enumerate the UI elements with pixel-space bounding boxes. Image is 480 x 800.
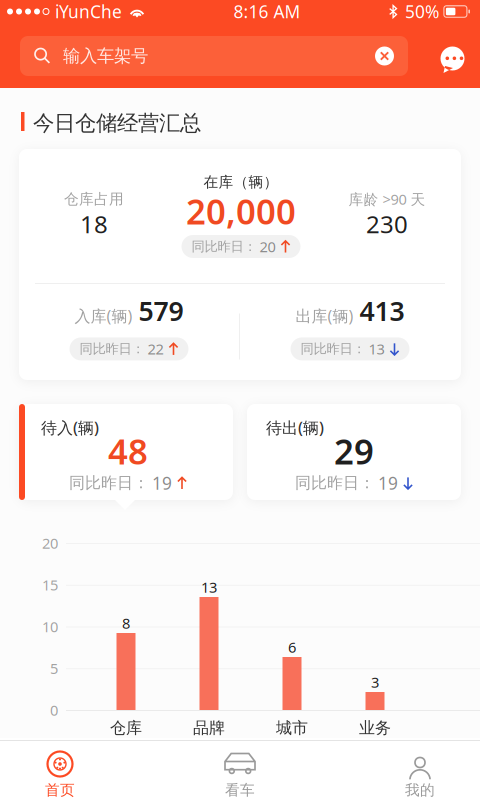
staticText: 出库(辆) — [295, 305, 353, 326]
staticText: 在库（辆） — [203, 173, 278, 191]
staticText: 20 — [42, 533, 58, 553]
staticText: 6 — [288, 637, 296, 657]
button[interactable]: 首页 — [0, 741, 120, 799]
staticText: 13 — [368, 339, 384, 359]
staticText: 品牌 — [193, 718, 225, 738]
staticText: 待入(辆) — [41, 417, 99, 438]
staticText: 8 — [122, 613, 130, 633]
staticText: 入库(辆) — [74, 305, 132, 326]
staticText: 18 — [80, 208, 108, 240]
staticText: 我的 — [405, 781, 435, 799]
staticText: 库龄 >90 天 — [348, 189, 425, 209]
staticText: 同比昨日： — [300, 341, 365, 357]
staticText: 同比昨日： — [295, 473, 375, 493]
staticText: 13 — [201, 577, 217, 597]
staticText: 业务 — [359, 718, 391, 738]
button[interactable]: 看车 — [180, 741, 300, 799]
staticText: 今日仓储经营汇总 — [33, 110, 201, 136]
staticText: 待出(辆) — [266, 417, 324, 438]
staticText: 仓库 — [110, 718, 142, 738]
staticText: 19 — [378, 471, 398, 494]
staticText: 同比昨日： — [79, 341, 144, 357]
staticText: 579 — [138, 293, 183, 328]
button[interactable]: 我的 — [360, 741, 480, 799]
staticText: 20,000 — [186, 188, 296, 234]
button[interactable]: 输入车架号 — [20, 36, 408, 76]
staticText: 50% — [405, 0, 439, 23]
staticText: 0 — [50, 700, 58, 720]
staticText: 仓库占用 — [64, 190, 124, 208]
staticText: 5 — [50, 658, 58, 678]
button[interactable]: Messages — [419, 36, 467, 76]
staticText: 15 — [42, 575, 58, 594]
staticText: 同比昨日： — [69, 473, 149, 493]
staticText: 230 — [366, 208, 408, 240]
staticText: iYunChe — [55, 0, 122, 23]
staticText: 20 — [259, 237, 275, 256]
staticText: 413 — [359, 293, 404, 328]
staticText: 首页 — [45, 781, 75, 799]
staticText: 22 — [147, 339, 163, 359]
staticText: 同比昨日： — [191, 238, 256, 255]
staticText: 看车 — [225, 781, 255, 799]
staticText: 19 — [152, 471, 172, 494]
staticText: 8:16 AM — [233, 0, 300, 23]
staticText: 48 — [108, 428, 148, 474]
staticText: 10 — [42, 617, 58, 636]
staticText: 城市 — [276, 718, 308, 738]
staticText: 3 — [371, 672, 379, 692]
staticText: 输入车架号 — [63, 45, 148, 67]
staticText: 29 — [334, 428, 374, 474]
